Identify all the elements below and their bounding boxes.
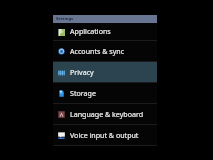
staticText: Language & keyboard	[70, 109, 144, 119]
button[interactable]: Privacy	[53, 62, 157, 83]
staticText: Privacy	[70, 67, 94, 77]
button[interactable]: Language & keyboard	[53, 104, 157, 125]
staticText: Accounts & sync	[70, 46, 125, 56]
staticText: Voice input & output	[70, 130, 139, 140]
button[interactable]: Applications	[53, 23, 157, 41]
button[interactable]: Storage	[53, 83, 157, 104]
staticText: Applications	[70, 26, 111, 36]
staticText: Storage	[70, 88, 96, 98]
staticText: Settings	[56, 16, 74, 22]
button[interactable]: Settings	[53, 15, 157, 23]
button[interactable]: Accounts & sync	[53, 41, 157, 62]
button[interactable]: Voice input & output	[53, 125, 157, 146]
